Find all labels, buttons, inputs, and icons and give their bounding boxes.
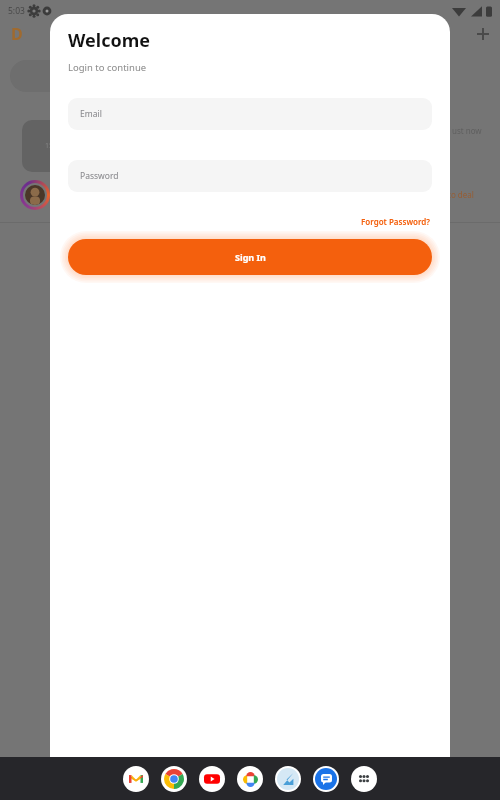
staticText: to deal (448, 189, 474, 200)
button[interactable]: Sign In (68, 239, 432, 275)
button[interactable]: Email (68, 98, 432, 130)
button[interactable]: Flutter (275, 766, 301, 792)
staticText: Forgot Password? (361, 216, 430, 227)
button[interactable]: All apps (351, 766, 377, 792)
staticText: D (11, 23, 23, 45)
button[interactable]: YouTube (199, 766, 225, 792)
staticText: Login to continue (68, 61, 147, 74)
button[interactable]: Forgot Password? (359, 214, 432, 229)
button[interactable]: Photos (237, 766, 263, 792)
other: Add (474, 25, 492, 43)
staticText: ust now (452, 125, 482, 136)
button[interactable]: Password (68, 160, 432, 192)
staticText: 150 (45, 141, 58, 151)
staticText: 5:03 (8, 5, 25, 17)
button[interactable]: Gmail (123, 766, 149, 792)
staticText: Sign In (235, 251, 266, 263)
staticText: Email (80, 108, 102, 120)
staticText: Welcome (68, 28, 150, 53)
staticText: Password (80, 170, 119, 182)
button[interactable]: Chrome (161, 766, 187, 792)
button[interactable]: Messages (313, 766, 339, 792)
